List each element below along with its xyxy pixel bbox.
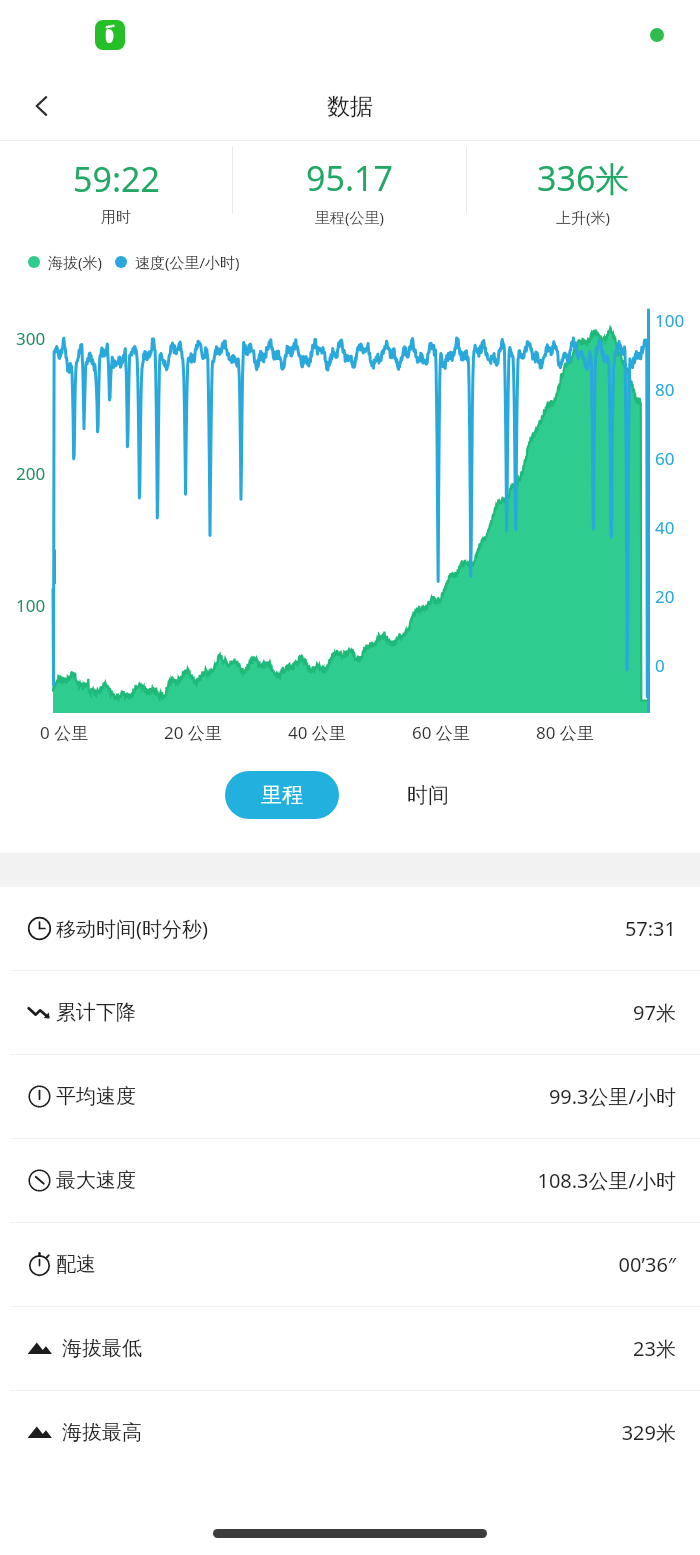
button[interactable]: 配速 [0,1223,700,1306]
button[interactable]: 累计下降 [0,971,700,1054]
staticText: 用时 [101,208,131,227]
staticText: 0 公里 [40,721,89,744]
staticText: 80 公里 [536,721,594,744]
staticText: 108.3公里/小时 [537,1167,676,1194]
staticText: 60 公里 [412,721,470,744]
staticText: 99.3公里/小时 [548,1083,676,1110]
staticText: 配速 [56,1252,96,1277]
button[interactable]: 海拔最高 [0,1391,700,1474]
staticText: 海拔(米) [48,252,103,272]
staticText: 平均速度 [56,1084,136,1109]
staticText: 时间 [407,782,449,808]
staticText: 336米 [537,155,630,201]
button[interactable]: 59:22 [0,141,232,241]
staticText: 60 [655,447,675,470]
staticText: 329米 [621,1419,676,1446]
button[interactable]: 海拔最低 [0,1307,700,1390]
staticText: 里程 [261,782,303,808]
staticText: 40 [655,516,675,539]
staticText: 0 [655,654,665,677]
staticText: 100 [16,594,46,617]
staticText: 00’36″ [618,1251,676,1278]
staticText: 20 [655,585,675,608]
staticText: 57:31 [624,915,676,942]
button[interactable]: 最大速度 [0,1139,700,1222]
button[interactable]: 里程 [225,771,339,819]
button[interactable]: 时间 [381,771,475,819]
staticText: 300 [16,327,46,350]
staticText: 累计下降 [56,1000,136,1025]
staticText: 速度(公里/小时) [135,252,240,272]
staticText: 里程(公里) [315,207,385,227]
button[interactable]: Back [14,78,70,134]
staticText: 40 公里 [288,721,346,744]
staticText: 59:22 [73,156,160,202]
button[interactable]: 平均速度 [0,1055,700,1138]
staticText: 移动时间(时分秒) [56,915,208,942]
button[interactable]: 移动时间(时分秒) [0,887,700,970]
staticText: 80 [655,378,675,401]
staticText: 95.17 [306,155,393,201]
staticText: 海拔最高 [62,1420,142,1445]
button[interactable]: 336米 [467,141,700,241]
staticText: 海拔最低 [62,1336,142,1361]
staticText: 上升(米) [556,207,611,227]
staticText: 100 [655,309,685,332]
staticText: 20 公里 [164,721,222,744]
staticText: 最大速度 [56,1168,136,1193]
button[interactable]: 95.17 [233,141,466,241]
staticText: 97米 [633,999,676,1026]
staticText: 200 [16,462,46,485]
staticText: 23米 [633,1335,676,1362]
staticText: 数据 [327,92,373,121]
